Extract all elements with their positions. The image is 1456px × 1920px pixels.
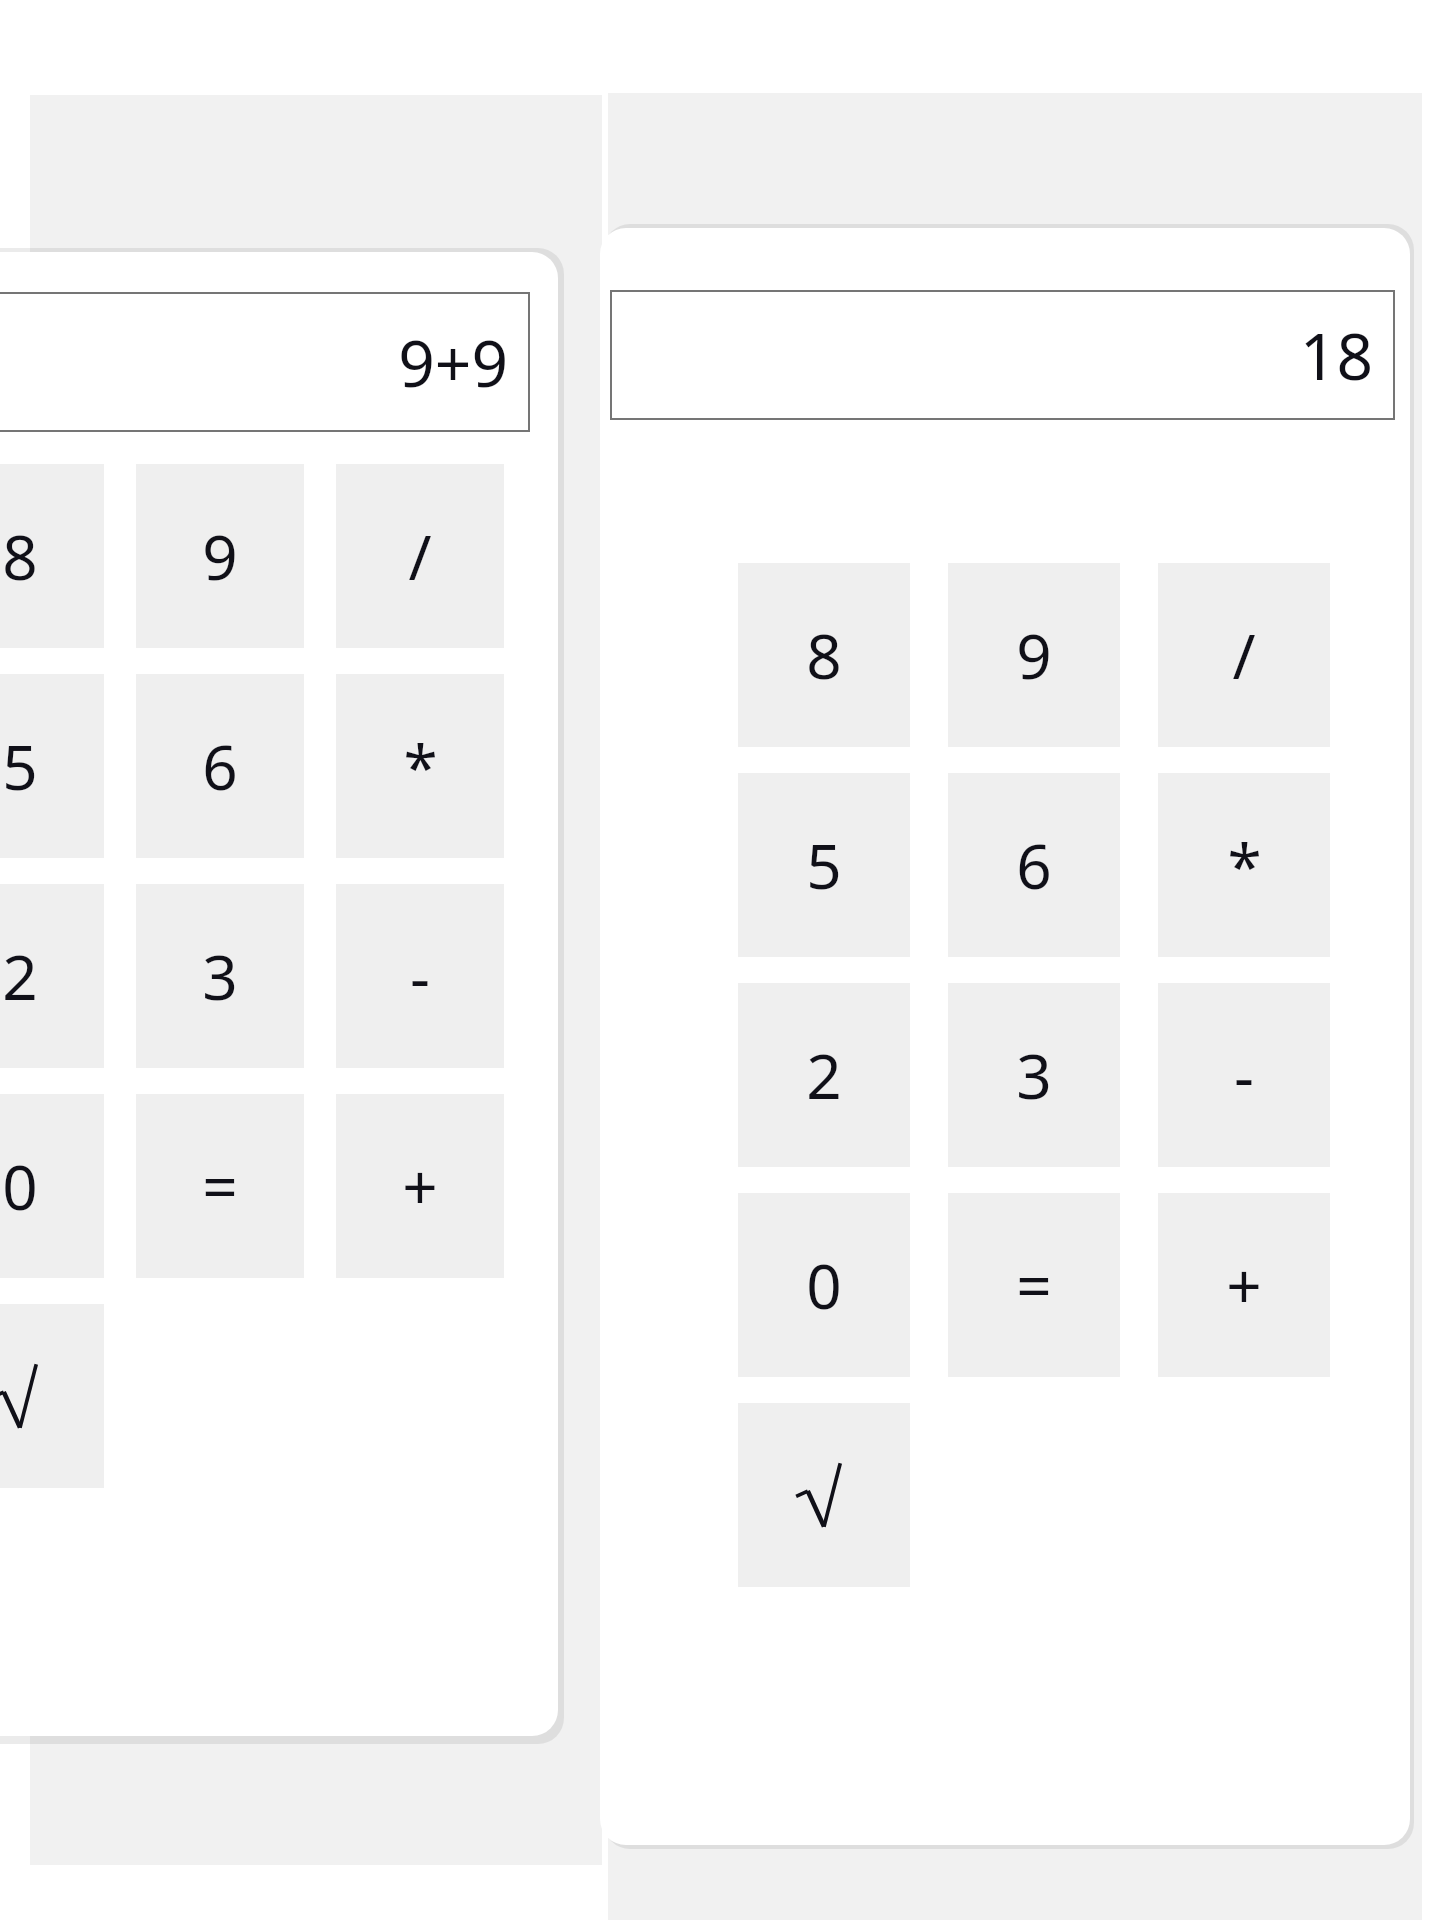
button[interactable]: 6 bbox=[136, 674, 304, 858]
staticText: 2 bbox=[2, 934, 38, 1018]
staticText: 9+9 bbox=[398, 319, 508, 406]
staticText: 8 bbox=[2, 514, 38, 598]
button[interactable]: 5 bbox=[738, 773, 910, 957]
staticText: / bbox=[1232, 613, 1256, 697]
staticText: * bbox=[1227, 823, 1262, 907]
button[interactable]: Square root bbox=[0, 1304, 104, 1488]
staticText: 3 bbox=[1016, 1033, 1052, 1117]
staticText: - bbox=[1234, 1033, 1254, 1117]
button[interactable]: 9 bbox=[948, 563, 1120, 747]
staticText: 6 bbox=[202, 724, 238, 808]
button[interactable]: + bbox=[1158, 1193, 1330, 1377]
button[interactable]: 2 bbox=[738, 983, 910, 1167]
staticText: 3 bbox=[202, 934, 238, 1018]
button[interactable]: Square root bbox=[738, 1403, 910, 1587]
button[interactable]: = bbox=[136, 1094, 304, 1278]
staticText: = bbox=[1016, 1243, 1052, 1327]
button[interactable]: 3 bbox=[136, 884, 304, 1068]
staticText: 8 bbox=[806, 613, 842, 697]
button[interactable]: * bbox=[336, 674, 504, 858]
staticText: + bbox=[402, 1144, 438, 1228]
button[interactable]: 18 bbox=[610, 290, 1395, 420]
button[interactable]: + bbox=[336, 1094, 504, 1278]
staticText: 0 bbox=[806, 1243, 842, 1327]
staticText: + bbox=[1226, 1243, 1262, 1327]
button[interactable]: / bbox=[1158, 563, 1330, 747]
staticText: / bbox=[408, 514, 432, 598]
button[interactable]: 0 bbox=[738, 1193, 910, 1377]
button[interactable]: 2 bbox=[0, 884, 104, 1068]
button[interactable]: 6 bbox=[948, 773, 1120, 957]
staticText: 2 bbox=[806, 1033, 842, 1117]
button[interactable]: - bbox=[336, 884, 504, 1068]
staticText: 6 bbox=[1016, 823, 1052, 907]
staticText: 0 bbox=[2, 1144, 38, 1228]
staticText: 18 bbox=[1299, 312, 1373, 399]
staticText: * bbox=[403, 724, 438, 808]
button[interactable]: 9 bbox=[136, 464, 304, 648]
button[interactable]: 5 bbox=[0, 674, 104, 858]
button[interactable]: 9+9 bbox=[0, 292, 530, 432]
button[interactable]: 3 bbox=[948, 983, 1120, 1167]
button[interactable]: / bbox=[336, 464, 504, 648]
button[interactable]: = bbox=[948, 1193, 1120, 1377]
staticText: = bbox=[202, 1144, 238, 1228]
button[interactable]: 0 bbox=[0, 1094, 104, 1278]
staticText: - bbox=[410, 934, 430, 1018]
button[interactable]: - bbox=[1158, 983, 1330, 1167]
staticText: 9 bbox=[1016, 613, 1052, 697]
staticText: 5 bbox=[806, 823, 842, 907]
staticText: 5 bbox=[2, 724, 38, 808]
button[interactable]: * bbox=[1158, 773, 1330, 957]
staticText: 9 bbox=[202, 514, 238, 598]
button[interactable]: 8 bbox=[738, 563, 910, 747]
button[interactable]: 8 bbox=[0, 464, 104, 648]
